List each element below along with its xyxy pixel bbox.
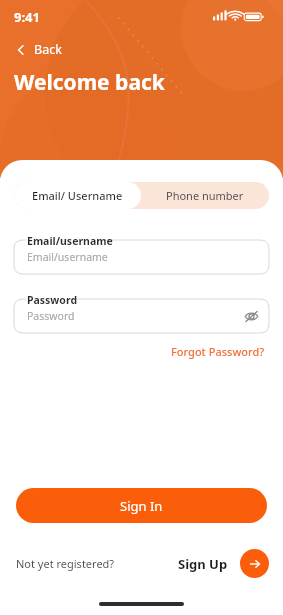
- staticText: Phone number: [166, 188, 244, 203]
- staticText: Forgot Password?: [171, 344, 265, 359]
- staticText: Not yet registered?: [16, 556, 115, 571]
- staticText: 9:41: [14, 8, 40, 26]
- button[interactable]: Sign Up: [176, 553, 230, 575]
- button[interactable]: Email/ Username: [14, 182, 141, 209]
- staticText: Email/ Username: [32, 188, 123, 203]
- button[interactable]: Show password: [239, 304, 263, 328]
- button[interactable]: Forgot Password?: [169, 342, 267, 361]
- staticText: Back: [34, 41, 62, 58]
- button[interactable]: Phone number: [141, 182, 269, 209]
- staticText: Email/username: [27, 250, 108, 264]
- staticText: Sign In: [120, 497, 163, 515]
- button[interactable]: Password: [14, 299, 269, 333]
- staticText: Password: [27, 309, 75, 323]
- button[interactable]: Go to sign up: [240, 549, 269, 578]
- staticText: Welcome back: [14, 68, 165, 97]
- button[interactable]: Back: [10, 38, 66, 61]
- staticText: Password: [27, 293, 78, 307]
- staticText: Email/username: [27, 234, 113, 248]
- staticText: Sign Up: [178, 555, 228, 573]
- button[interactable]: Sign In: [16, 488, 267, 523]
- button[interactable]: Email/username: [14, 240, 269, 274]
